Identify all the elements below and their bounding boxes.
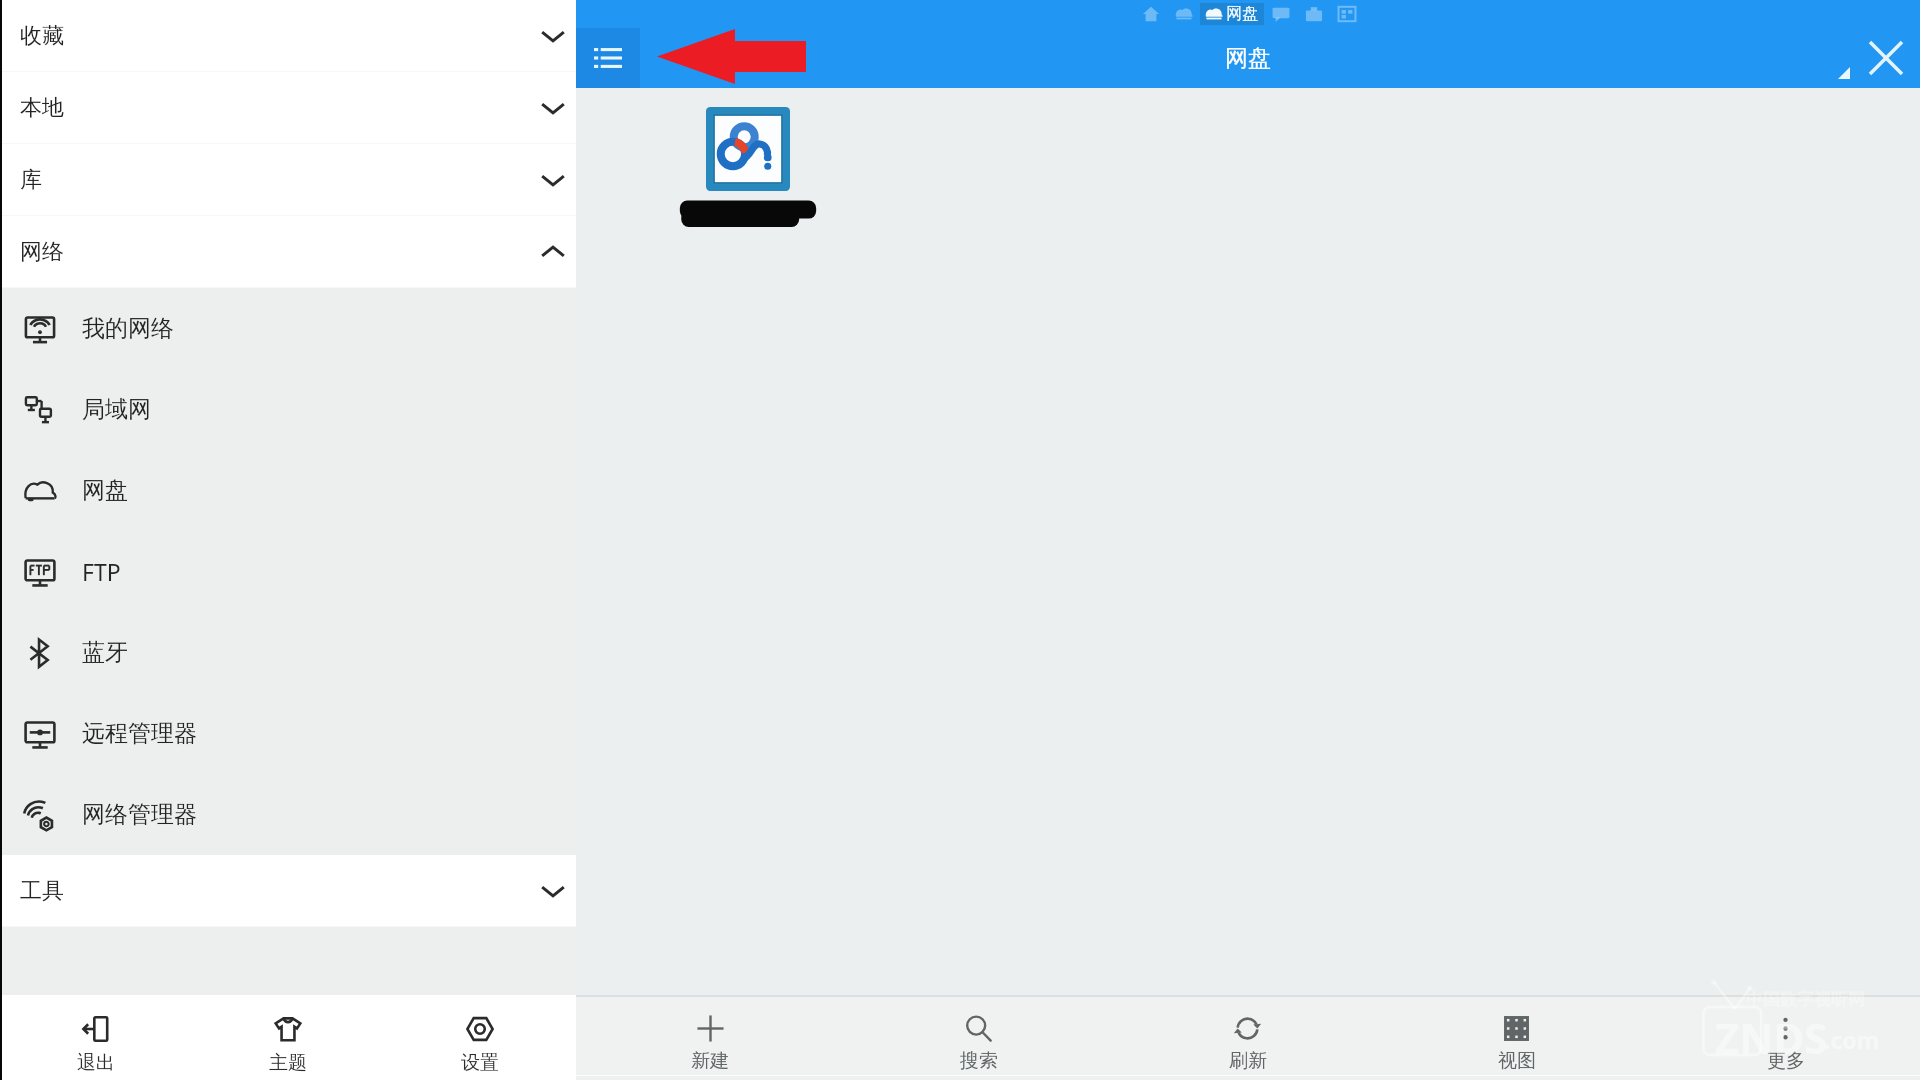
button[interactable]: 新建 <box>576 997 844 1075</box>
staticText: FTP <box>82 556 121 587</box>
staticText: 网络 <box>20 238 64 266</box>
staticText: 工具 <box>20 877 64 905</box>
button[interactable]: 库 <box>0 144 576 216</box>
staticText: 本地 <box>20 94 64 122</box>
staticText: 中国数字视听网 <box>1746 989 1865 1010</box>
button[interactable]: Messages <box>1264 1 1297 27</box>
staticText: 远程管理器 <box>82 719 197 748</box>
button[interactable]: FTP <box>0 531 576 612</box>
staticText: 库 <box>20 166 42 194</box>
button[interactable]: Cloud <box>1167 1 1200 27</box>
staticText: 网盘 <box>1226 4 1258 24</box>
button[interactable]: 网盘 <box>0 450 576 531</box>
button[interactable]: 网络 <box>0 216 576 288</box>
button[interactable]: 局域网 <box>0 369 576 450</box>
button[interactable]: 本地 <box>0 72 576 144</box>
staticText: 蓝牙 <box>82 638 128 667</box>
staticText: 网盘 <box>82 476 128 505</box>
button[interactable]: 主题 <box>192 995 384 1080</box>
staticText: 我的网络 <box>82 314 174 343</box>
staticText: 退出 <box>77 1051 115 1075</box>
button[interactable]: 收藏 <box>0 0 576 72</box>
staticText: 收藏 <box>20 22 64 50</box>
button[interactable]: 搜索 <box>844 997 1113 1075</box>
button[interactable] <box>677 107 819 230</box>
staticText: 更多 <box>1767 1049 1805 1073</box>
staticText: ZNDS <box>1715 1009 1828 1066</box>
button[interactable]: Home <box>1134 1 1167 27</box>
staticText: 主题 <box>269 1051 307 1075</box>
staticText: 局域网 <box>82 395 151 424</box>
staticText: 搜索 <box>960 1049 998 1073</box>
staticText: 刷新 <box>1229 1049 1267 1073</box>
button[interactable]: Menu <box>576 28 640 88</box>
staticText: 视图 <box>1498 1049 1536 1073</box>
button[interactable]: Apps <box>1297 1 1330 27</box>
button[interactable]: 设置 <box>384 995 576 1080</box>
button[interactable]: 更多 <box>1651 997 1920 1075</box>
staticText: 设置 <box>461 1051 499 1075</box>
button[interactable]: 视图 <box>1382 997 1651 1075</box>
button[interactable]: 远程管理器 <box>0 693 576 774</box>
button[interactable]: 退出 <box>0 995 192 1080</box>
staticText: 网盘 <box>1225 44 1271 73</box>
button[interactable]: Close <box>1856 28 1916 88</box>
staticText: 新建 <box>691 1049 729 1073</box>
button[interactable]: 刷新 <box>1113 997 1382 1075</box>
button[interactable]: 网盘 <box>1205 3 1258 25</box>
button[interactable]: Scan <box>1330 1 1363 27</box>
button[interactable]: 工具 <box>0 855 576 927</box>
staticText: 网络管理器 <box>82 800 197 829</box>
button[interactable]: 蓝牙 <box>0 612 576 693</box>
button[interactable]: 我的网络 <box>0 288 576 369</box>
button[interactable]: 网络管理器 <box>0 774 576 855</box>
